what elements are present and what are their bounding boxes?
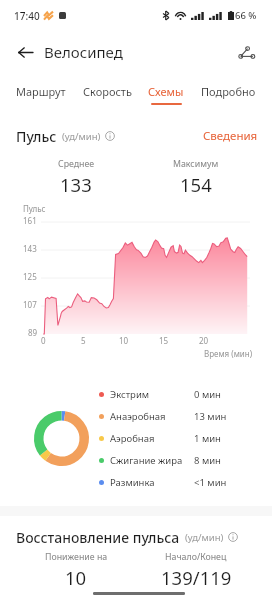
staticText: Разминка: [110, 476, 155, 489]
staticText: Пульс: [16, 127, 57, 145]
staticText: Велосипед: [44, 42, 123, 62]
staticText: Сжигание жира: [110, 454, 183, 467]
staticText: Маршрут: [16, 84, 66, 99]
staticText: (уд/мин): [185, 531, 224, 544]
staticText: Среднее: [58, 158, 95, 170]
button[interactable]: Share: [232, 38, 260, 66]
staticText: Пульс: [23, 203, 46, 214]
button[interactable]: Схемы: [141, 84, 191, 110]
staticText: 8 мин: [194, 454, 221, 467]
staticText: (уд/мин): [62, 130, 101, 143]
staticText: 0: [41, 335, 46, 346]
staticText: 107: [23, 299, 37, 310]
button[interactable]: Подробно: [194, 84, 263, 110]
staticText: 20: [199, 335, 209, 346]
staticText: 5: [81, 335, 86, 346]
staticText: 139/119: [161, 565, 232, 590]
button[interactable]: Сведения: [203, 128, 258, 144]
button[interactable]: Скорость: [76, 84, 139, 110]
staticText: 133: [60, 172, 92, 197]
staticText: 143: [23, 243, 37, 254]
staticText: Максимум: [173, 158, 219, 170]
staticText: 0 мин: [194, 388, 221, 401]
staticText: 17:40: [14, 9, 40, 23]
button[interactable]: Маршрут: [9, 84, 73, 110]
staticText: 1 мин: [194, 432, 221, 445]
staticText: 89: [28, 327, 38, 338]
staticText: Понижение на: [45, 551, 108, 563]
staticText: 10: [119, 335, 129, 346]
staticText: 15: [159, 335, 169, 346]
staticText: Анаэробная: [110, 410, 166, 423]
staticText: Подробно: [201, 84, 256, 99]
staticText: Скорость: [83, 84, 132, 99]
staticText: 13 мин: [194, 410, 227, 423]
staticText: Схемы: [148, 84, 184, 99]
staticText: 154: [180, 172, 212, 197]
staticText: Аэробная: [110, 432, 155, 445]
staticText: Восстановление пульса: [16, 528, 180, 546]
staticText: <1 мин: [194, 476, 227, 489]
staticText: 125: [23, 271, 37, 282]
staticText: 161: [23, 215, 37, 226]
staticText: Сведения: [203, 128, 258, 144]
staticText: 10: [65, 565, 87, 590]
staticText: 66 %: [235, 9, 257, 22]
staticText: Время (мин): [204, 348, 253, 359]
button[interactable]: Back: [11, 38, 39, 66]
staticText: Начало/Конец: [165, 551, 227, 563]
staticText: Экстрим: [110, 388, 150, 401]
